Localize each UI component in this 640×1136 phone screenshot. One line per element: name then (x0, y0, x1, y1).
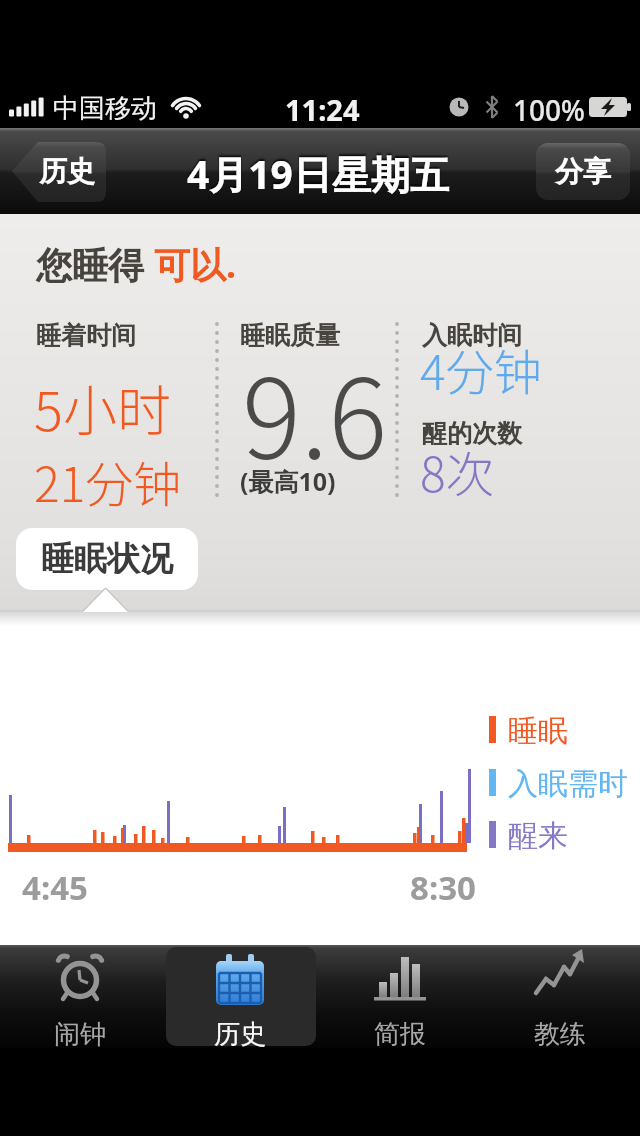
staticText: 睡眠质量 (240, 320, 340, 351)
staticText: 11:24 (285, 90, 360, 129)
staticText: 入眠需时 (508, 765, 628, 803)
staticText: 您睡得 (36, 240, 154, 289)
staticText: 简报 (374, 1018, 426, 1051)
staticText: 8次 (420, 436, 494, 506)
staticText: 醒来 (508, 817, 568, 855)
staticText: 睡着时间 (36, 320, 136, 351)
staticText: 睡眠状况 (41, 538, 173, 580)
button[interactable]: 闹钟 (0, 945, 160, 1048)
staticText: 21分钟 (34, 446, 182, 516)
button[interactable]: 历史 (160, 945, 320, 1048)
button[interactable]: 历史 (12, 140, 106, 202)
staticText: 5小时 (34, 368, 171, 446)
staticText: 4月19日星期五 (187, 147, 449, 200)
staticText: 9.6 (242, 331, 388, 490)
staticText: 中国移动 (53, 92, 157, 125)
staticText: 4分钟 (420, 334, 542, 404)
staticText: 睡眠 (508, 712, 568, 750)
staticText: 100% (513, 91, 585, 129)
button[interactable]: 简报 (320, 945, 480, 1048)
staticText: (最高10) (240, 464, 336, 498)
button[interactable]: 分享 (536, 143, 630, 200)
staticText: 8:30 (410, 865, 476, 910)
staticText: 历史 (39, 154, 95, 189)
staticText: 醒的次数 (422, 418, 522, 449)
button[interactable]: 教练 (480, 945, 640, 1048)
staticText: 闹钟 (54, 1018, 106, 1051)
staticText: 历史 (214, 1018, 266, 1051)
staticText: 入眠时间 (422, 320, 522, 351)
staticText: 分享 (555, 154, 611, 189)
staticText: 4:45 (22, 865, 88, 910)
button[interactable]: 睡眠状况 (16, 528, 198, 590)
staticText: 教练 (534, 1018, 586, 1051)
staticText: 可以. (154, 240, 237, 289)
